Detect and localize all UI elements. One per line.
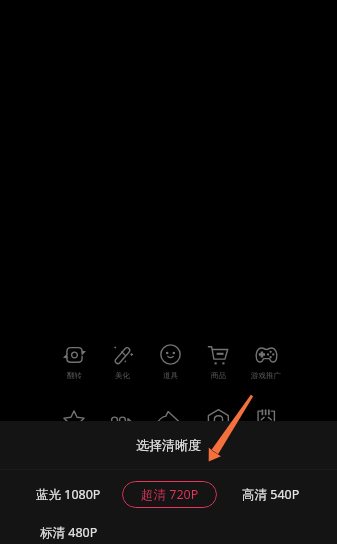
button[interactable]: Tool bbox=[194, 402, 242, 426]
staticText: 商品 bbox=[211, 371, 226, 380]
button[interactable]: 标清 480P bbox=[21, 521, 116, 544]
staticText: 高清 540P bbox=[242, 486, 300, 503]
button[interactable]: 超清 720P bbox=[122, 481, 217, 508]
button[interactable]: Tool bbox=[98, 402, 146, 426]
staticText: 美化 bbox=[115, 371, 130, 380]
staticText: 翻转 bbox=[67, 371, 82, 380]
button[interactable]: Tool bbox=[50, 402, 98, 426]
button[interactable]: Tool bbox=[146, 402, 194, 426]
button[interactable]: 美化 bbox=[98, 343, 146, 380]
button[interactable]: 游戏推广 bbox=[242, 343, 290, 380]
staticText: 超清 720P bbox=[141, 486, 199, 503]
button[interactable]: 商品 bbox=[194, 343, 242, 380]
staticText: 标清 480P bbox=[40, 524, 98, 541]
staticText: 游戏推广 bbox=[251, 371, 281, 380]
staticText: 蓝光 1080P bbox=[36, 486, 101, 503]
button[interactable]: 蓝光 1080P bbox=[21, 481, 116, 508]
button[interactable]: 道具 bbox=[146, 343, 194, 380]
staticText: 选择清晰度 bbox=[136, 437, 201, 453]
button[interactable]: 高清 540P bbox=[223, 481, 318, 508]
button[interactable]: Tool bbox=[242, 402, 290, 426]
button[interactable]: 翻转 bbox=[50, 343, 98, 380]
staticText: 道具 bbox=[163, 371, 178, 380]
